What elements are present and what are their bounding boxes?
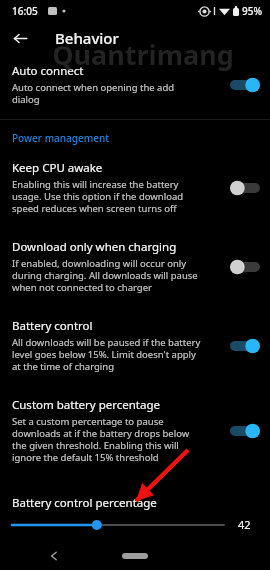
staticText: Custom battery percentage <box>12 397 161 413</box>
button[interactable]: Battery control percentage <box>0 495 270 532</box>
button[interactable]: Auto connect <box>0 54 270 115</box>
staticText: Auto connect <box>12 63 84 79</box>
button[interactable]: Custom battery percentage <box>0 388 270 473</box>
button[interactable]: Back <box>44 546 64 566</box>
staticText: Battery control <box>12 318 93 334</box>
staticText: All downloads will be paused if the batt… <box>12 336 201 373</box>
staticText: Auto connect when opening the add dialog <box>12 81 175 106</box>
staticText: Quantrimang <box>52 36 234 73</box>
button[interactable]: Keep CPU awake <box>0 151 270 224</box>
staticText: Behavior <box>55 28 119 48</box>
staticText: If enabled, downloading will occur only … <box>12 257 198 294</box>
button[interactable]: Back <box>8 26 32 50</box>
staticText: Download only when charging <box>12 239 177 255</box>
staticText: 42 <box>238 517 260 532</box>
staticText: 95% <box>242 4 262 18</box>
staticText: Enabling this will increase the battery … <box>12 178 184 215</box>
staticText: Power management <box>12 131 110 145</box>
button[interactable]: Home <box>122 553 148 559</box>
button[interactable]: Download only when charging <box>0 230 270 303</box>
staticText: Battery control percentage <box>12 495 157 511</box>
staticText: 16:05 <box>12 4 38 18</box>
staticText: Keep CPU awake <box>12 160 103 176</box>
staticText: Set a custom percentage to pause downloa… <box>12 415 190 464</box>
button[interactable]: Battery control <box>0 309 270 382</box>
